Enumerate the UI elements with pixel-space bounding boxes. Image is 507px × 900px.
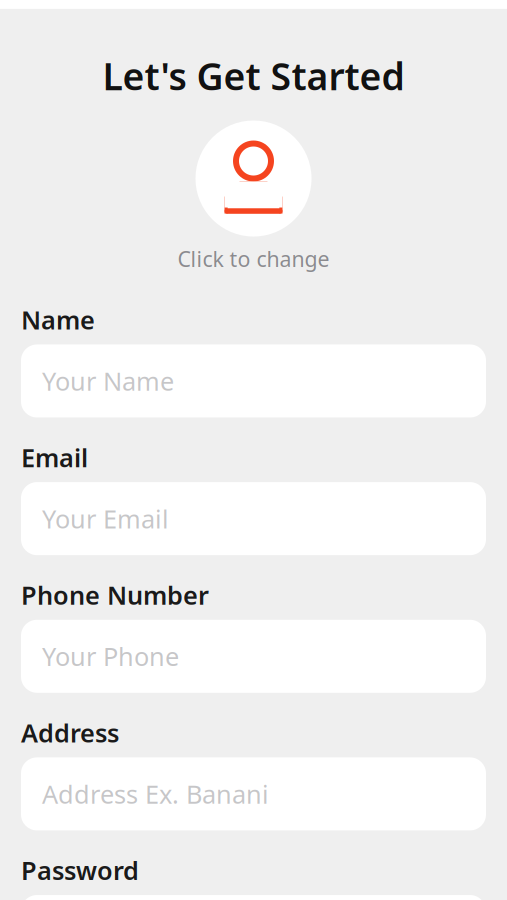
button[interactable]: Your Phone [21, 620, 486, 693]
button[interactable]: Your Name [21, 344, 486, 417]
button[interactable]: Your Email [21, 482, 486, 555]
staticText: Click to change [177, 244, 329, 273]
staticText: Phone Number [21, 578, 209, 612]
button[interactable]: Back [0, 0, 125, 15]
staticText: Let's Get Started [102, 51, 404, 100]
staticText: Your Phone [42, 639, 179, 673]
staticText: Your Email [42, 502, 169, 535]
button[interactable]: Address Ex. Banani [21, 757, 486, 830]
staticText: Your Name [42, 364, 174, 398]
staticText: Password [21, 853, 139, 887]
staticText: Address [21, 716, 119, 749]
staticText: Name [21, 303, 95, 336]
button[interactable]: Change profile photo [177, 120, 329, 273]
staticText: Address Ex. Banani [42, 777, 269, 811]
staticText: Email [21, 440, 88, 474]
